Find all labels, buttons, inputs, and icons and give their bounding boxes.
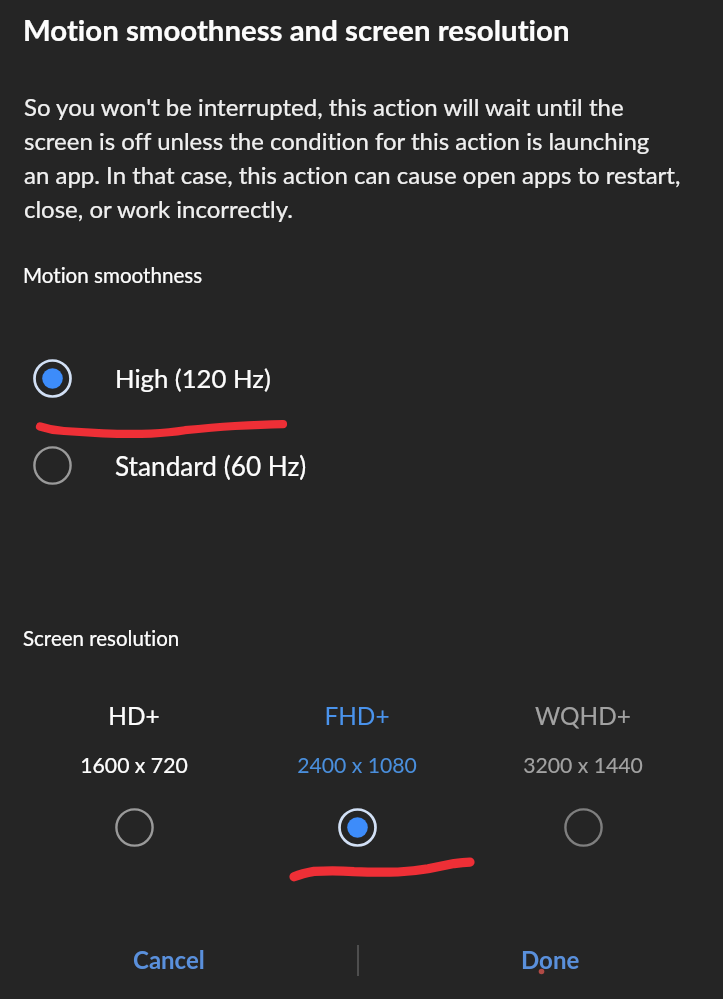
button[interactable]: Cancel xyxy=(130,937,208,981)
staticText: High (120 Hz) xyxy=(115,363,271,394)
button[interactable]: Unselected option xyxy=(0,436,723,494)
button[interactable]: WQHD+ xyxy=(478,701,688,849)
button[interactable]: FHD+ xyxy=(252,701,462,849)
other: Unselected option xyxy=(33,446,72,485)
staticText: So you won't be interrupted, this action… xyxy=(24,92,624,121)
staticText: Motion smoothness xyxy=(23,263,203,288)
staticText: Screen resolution xyxy=(23,626,180,651)
staticText: an app. In that case, this action can ca… xyxy=(24,160,681,189)
other: Unselected option xyxy=(115,808,154,847)
staticText: WQHD+ xyxy=(535,701,631,730)
staticText: Done xyxy=(521,945,580,974)
other: Selected option xyxy=(33,359,72,398)
button[interactable]: Selected option xyxy=(0,349,723,407)
staticText: close, or work incorrectly. xyxy=(24,194,293,223)
staticText: 1600 x 720 xyxy=(80,752,188,777)
staticText: Standard (60 Hz) xyxy=(115,450,307,481)
staticText: 3200 x 1440 xyxy=(523,752,643,777)
staticText: screen is off unless the condition for t… xyxy=(24,126,650,155)
staticText: Motion smoothness and screen resolution xyxy=(23,12,570,47)
staticText: 2400 x 1080 xyxy=(297,752,417,777)
staticText: Cancel xyxy=(133,945,205,974)
staticText: FHD+ xyxy=(324,701,390,730)
other: Selected option xyxy=(338,808,377,847)
other: Unselected option xyxy=(564,808,603,847)
button[interactable]: Done xyxy=(518,937,582,981)
staticText: HD+ xyxy=(108,701,160,730)
button[interactable]: HD+ xyxy=(29,701,239,849)
